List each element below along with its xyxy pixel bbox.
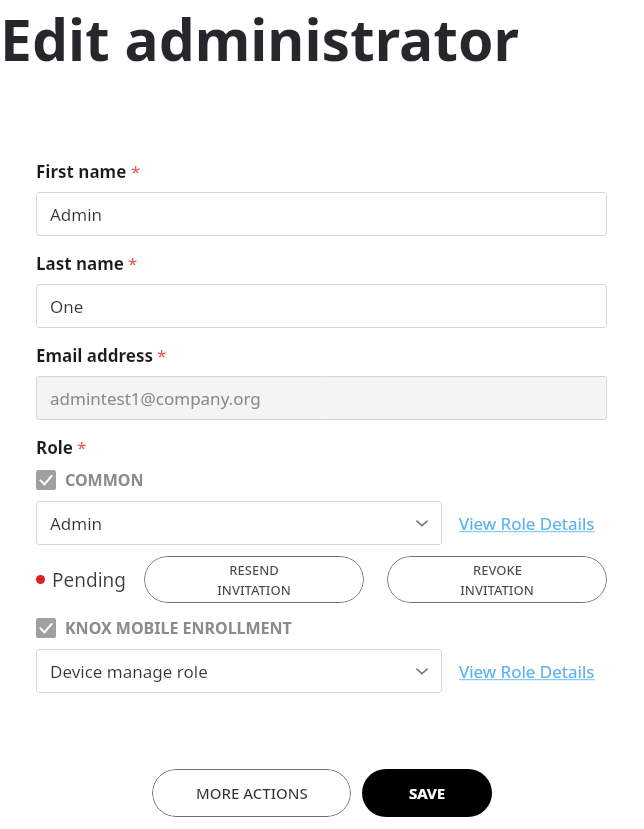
button[interactable]: REVOKE (387, 556, 607, 603)
staticText: Email address (36, 344, 153, 367)
button[interactable]: COMMON (36, 469, 144, 491)
button[interactable]: One (36, 284, 607, 328)
button[interactable]: SAVE (362, 769, 492, 817)
staticText: * (128, 252, 138, 275)
staticText: Role (36, 436, 73, 459)
staticText: Admin (50, 512, 103, 535)
button[interactable]: KNOX MOBILE ENROLLMENT (36, 617, 292, 639)
button[interactable]: Admin (36, 192, 607, 236)
staticText: MORE ACTIONS (196, 783, 308, 803)
staticText: * (157, 344, 167, 367)
button[interactable]: View Role Details (459, 512, 595, 535)
button[interactable]: admintest1@company.org (36, 376, 607, 420)
staticText: One (50, 295, 84, 318)
staticText: Last name (36, 252, 124, 275)
button[interactable]: MORE ACTIONS (152, 769, 351, 817)
staticText: View Role Details (459, 512, 595, 535)
button[interactable]: RESEND (144, 556, 364, 603)
button[interactable]: Device manage role (36, 649, 442, 693)
staticText: INVITATION (460, 581, 534, 599)
staticText: First name (36, 160, 127, 183)
staticText: Device manage role (50, 660, 208, 683)
staticText: Admin (50, 203, 103, 226)
staticText: Edit administrator (0, 0, 644, 78)
button[interactable]: Admin (36, 501, 442, 545)
staticText: REVOKE (473, 561, 522, 579)
staticText: SAVE (409, 783, 446, 803)
staticText: INVITATION (217, 581, 291, 599)
staticText: * (131, 160, 141, 183)
staticText: View Role Details (459, 660, 595, 683)
staticText: KNOX MOBILE ENROLLMENT (65, 617, 292, 639)
staticText: * (77, 436, 87, 459)
staticText: admintest1@company.org (50, 387, 261, 410)
staticText: COMMON (65, 469, 144, 491)
button[interactable]: View Role Details (459, 660, 595, 683)
staticText: RESEND (229, 561, 279, 579)
staticText: Pending (52, 567, 126, 593)
